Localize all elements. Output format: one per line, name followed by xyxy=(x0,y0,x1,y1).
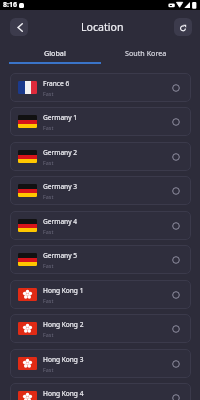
staticText: South Korea xyxy=(125,48,167,58)
staticText: Germany 5 xyxy=(43,251,78,260)
button[interactable]: Hong Kong 1 xyxy=(10,280,191,309)
staticText: Fast xyxy=(43,366,54,373)
staticText: Hong Kong 1 xyxy=(43,286,84,295)
button[interactable]: South Korea xyxy=(100,44,191,61)
staticText: Fast xyxy=(43,331,54,338)
staticText: Germany 4 xyxy=(43,217,78,226)
button[interactable]: France 6 xyxy=(10,73,191,102)
button[interactable]: Germany 3 xyxy=(10,176,191,205)
staticText: Hong Kong 2 xyxy=(43,320,84,329)
staticText: Germany 1 xyxy=(43,113,78,122)
button[interactable]: Hong Kong 3 xyxy=(10,349,191,378)
staticText: Fast xyxy=(43,228,54,235)
button[interactable]: Hong Kong 4 xyxy=(10,383,191,400)
staticText: 8:16 xyxy=(3,0,17,10)
staticText: Hong Kong 3 xyxy=(43,355,84,364)
button[interactable]: Back xyxy=(10,18,28,36)
staticText: France 6 xyxy=(43,79,70,88)
button[interactable]: Refresh xyxy=(174,18,192,36)
staticText: Hong Kong 4 xyxy=(43,389,84,398)
staticText: Germany 2 xyxy=(43,148,78,157)
staticText: Fast xyxy=(43,262,54,269)
button[interactable]: Hong Kong 2 xyxy=(10,314,191,343)
staticText: Fast xyxy=(43,90,54,97)
button[interactable]: Germany 1 xyxy=(10,107,191,136)
staticText: Global xyxy=(44,48,66,58)
button[interactable]: Germany 2 xyxy=(10,142,191,171)
staticText: Fast xyxy=(43,297,54,304)
staticText: Fast xyxy=(43,193,54,200)
button[interactable]: Germany 5 xyxy=(10,245,191,274)
staticText: Fast xyxy=(43,124,54,131)
button[interactable]: Germany 4 xyxy=(10,211,191,240)
staticText: Fast xyxy=(43,159,54,166)
button[interactable]: Global xyxy=(9,44,100,61)
staticText: Location xyxy=(81,20,124,34)
staticText: Germany 3 xyxy=(43,182,78,191)
